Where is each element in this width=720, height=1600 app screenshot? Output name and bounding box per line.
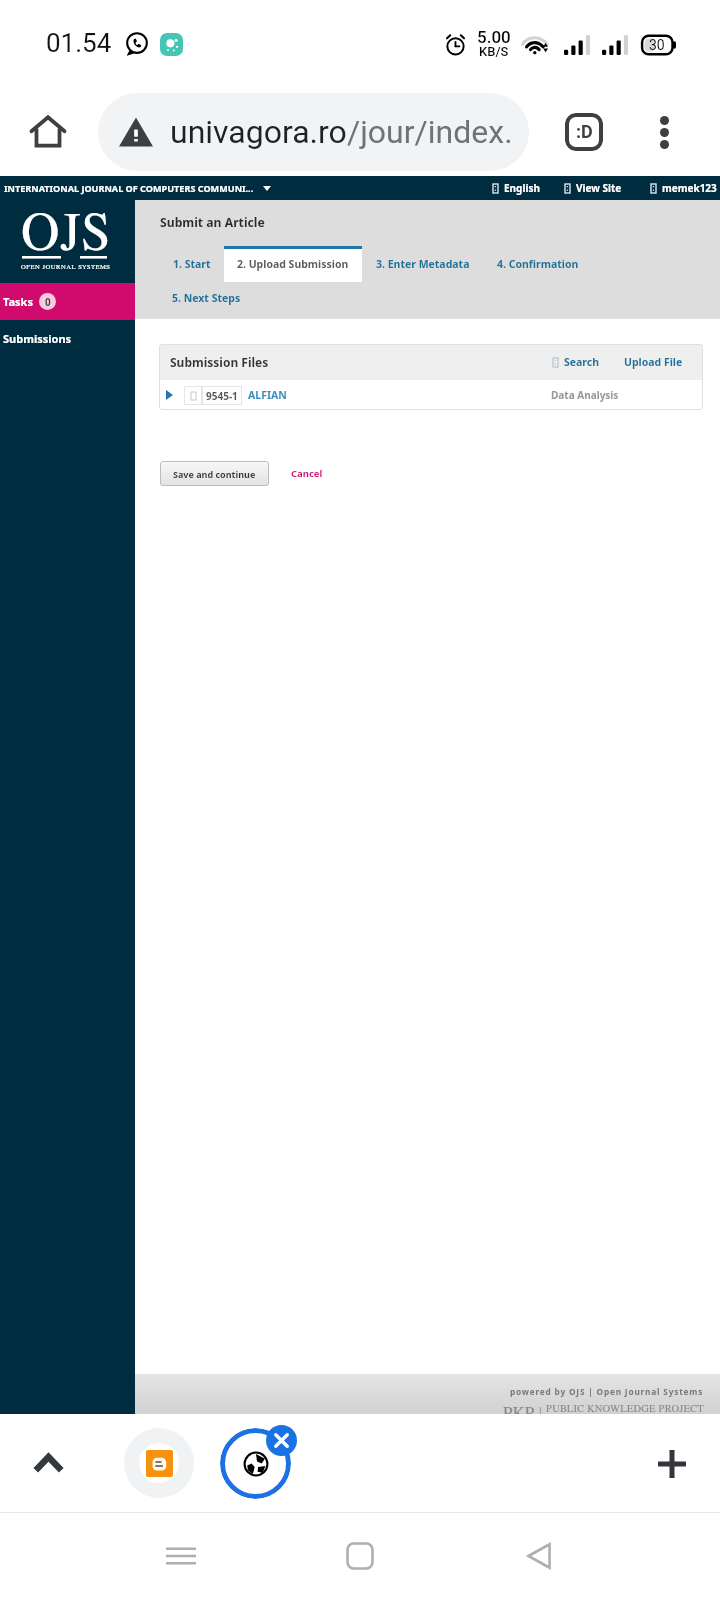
button[interactable]: 3. Enter Metadata	[362, 246, 484, 282]
staticText: Upload File	[624, 355, 683, 369]
staticText: View Site	[576, 181, 622, 195]
button[interactable]: English	[493, 181, 540, 195]
staticText: 4. Confirmation	[497, 257, 579, 271]
staticText: ALFIAN	[248, 388, 287, 402]
button[interactable]: Upload File	[624, 355, 683, 369]
button[interactable]: Close tab	[266, 1425, 297, 1456]
staticText: Data Analysis	[551, 388, 619, 402]
button[interactable]: univagora.ro	[98, 93, 529, 171]
button[interactable]: Cancel	[285, 460, 329, 487]
staticText: Save and continue	[173, 468, 256, 480]
staticText: KB/S	[479, 44, 509, 59]
staticText: /jour/index.	[347, 113, 513, 151]
staticText: INTERNATIONAL JOURNAL OF COMPUTERS COMMU…	[4, 182, 254, 194]
button[interactable]: 5. Next Steps	[160, 282, 253, 314]
button[interactable]: More options	[634, 102, 694, 162]
button[interactable]: Submissions	[0, 320, 135, 357]
button[interactable]: Home	[329, 1525, 391, 1587]
staticText: powered by OJS | Open Journal Systems	[510, 1386, 704, 1397]
staticText: |	[535, 1405, 546, 1414]
staticText: 5.00	[477, 27, 511, 47]
staticText: 2. Upload Submission	[237, 257, 349, 271]
button[interactable]: 9545-1	[159, 380, 703, 410]
button[interactable]: Back	[508, 1525, 570, 1587]
button[interactable]: 4. Confirmation	[484, 246, 592, 282]
staticText: memek123	[662, 181, 717, 195]
staticText: 0	[45, 295, 51, 309]
staticText: 1. Start	[173, 257, 211, 271]
button[interactable]: Home	[16, 100, 80, 164]
button[interactable]: Tab switcher	[552, 100, 616, 164]
button[interactable]: 2. Upload Submission	[224, 246, 362, 282]
staticText: English	[504, 181, 540, 195]
button[interactable]: Expand toolbar	[18, 1432, 78, 1492]
staticText: Search	[564, 355, 600, 369]
staticText: Tasks	[3, 294, 33, 309]
button[interactable]: New tab	[642, 1434, 702, 1494]
button[interactable]: View Site	[565, 181, 622, 195]
button[interactable]: Tasks	[0, 283, 135, 320]
button[interactable]: Search	[553, 355, 600, 369]
staticText: 3. Enter Metadata	[376, 257, 470, 271]
staticText: OJS	[21, 208, 111, 261]
staticText: 30	[649, 37, 665, 53]
staticText: PUBLIC KNOWLEDGE PROJECT	[546, 1404, 704, 1413]
button[interactable]: Current tab	[220, 1428, 291, 1499]
staticText: :D	[576, 121, 593, 142]
button[interactable]: memek123	[651, 181, 717, 195]
staticText: PKP	[503, 1405, 535, 1414]
button[interactable]: Save and continue	[160, 461, 269, 486]
button[interactable]: 1. Start	[160, 246, 224, 282]
staticText: univagora.ro	[170, 113, 347, 151]
staticText: 01.54	[46, 28, 112, 58]
staticText: 9545-1	[206, 389, 238, 403]
staticText: Submission Files	[170, 354, 269, 370]
staticText: Submissions	[3, 331, 72, 346]
staticText: 5. Next Steps	[172, 291, 241, 305]
staticText: Submit an Article	[160, 214, 265, 231]
button[interactable]: Blogger tab	[124, 1428, 194, 1498]
staticText: Cancel	[291, 467, 323, 480]
button[interactable]: Recent apps	[150, 1525, 212, 1587]
staticText: OPEN JOURNAL SYSTEMS	[21, 264, 111, 271]
